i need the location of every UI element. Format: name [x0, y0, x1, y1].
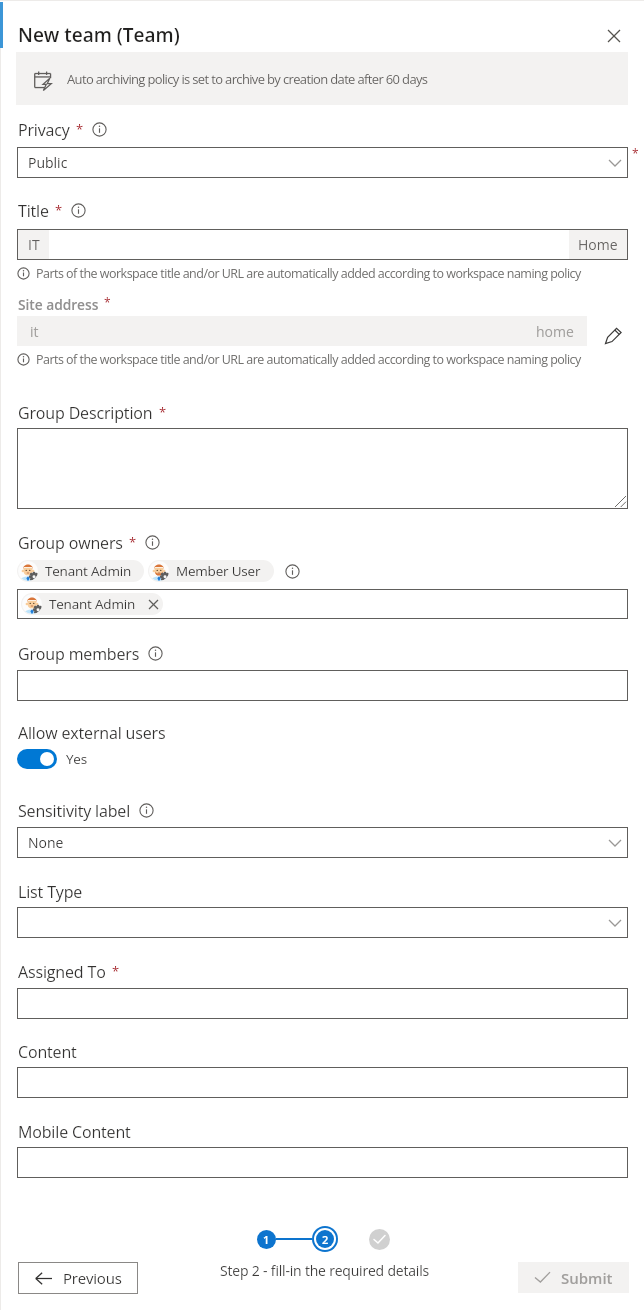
button[interactable]: Previous: [18, 1262, 138, 1294]
staticText: home: [536, 322, 574, 341]
button[interactable]: [17, 1067, 628, 1098]
staticText: it: [30, 322, 39, 341]
staticText: Group Description: [18, 402, 153, 424]
staticText: *: [104, 294, 111, 310]
button[interactable]: [17, 1147, 628, 1178]
button[interactable]: Tenant Admin: [21, 593, 163, 615]
button[interactable]: Edit site address: [601, 323, 626, 348]
staticText: *: [632, 145, 639, 161]
button[interactable]: Step 1: [257, 1230, 276, 1249]
button[interactable]: Member User: [148, 560, 274, 582]
staticText: Member User: [176, 562, 261, 580]
button[interactable]: Tenant Admin: [17, 589, 628, 619]
staticText: *: [112, 962, 120, 980]
staticText: Privacy: [18, 119, 70, 141]
staticText: Tenant Admin: [49, 595, 135, 613]
button[interactable]: Close: [598, 20, 630, 52]
staticText: Allow external users: [18, 722, 166, 744]
button[interactable]: Step 2: [312, 1226, 338, 1252]
button[interactable]: IT: [17, 229, 628, 260]
staticText: Auto archiving policy is set to archive …: [67, 70, 428, 88]
staticText: 2: [322, 1232, 329, 1247]
staticText: Tenant Admin: [45, 562, 131, 580]
staticText: Assigned To: [18, 961, 106, 983]
staticText: *: [55, 201, 63, 219]
button[interactable]: Remove Tenant Admin: [144, 595, 162, 613]
staticText: Submit: [561, 1268, 613, 1288]
staticText: New team (Team): [18, 22, 180, 48]
staticText: Group owners: [18, 532, 123, 554]
staticText: None: [28, 833, 64, 852]
button[interactable]: [17, 670, 628, 701]
button[interactable]: it: [17, 316, 587, 346]
staticText: *: [76, 120, 84, 138]
staticText: *: [129, 533, 137, 551]
button[interactable]: Tenant Admin: [17, 560, 144, 582]
button[interactable]: [17, 907, 628, 938]
staticText: Content: [18, 1041, 77, 1063]
staticText: 1: [263, 1232, 270, 1247]
staticText: List Type: [18, 881, 83, 903]
button[interactable]: Public: [17, 147, 628, 178]
button[interactable]: Submit: [518, 1262, 629, 1293]
staticText: *: [159, 403, 167, 421]
staticText: Title: [18, 200, 49, 222]
button[interactable]: Step 3: [369, 1229, 390, 1250]
staticText: Previous: [63, 1268, 122, 1288]
button[interactable]: None: [17, 827, 628, 858]
button[interactable]: Yes: [17, 749, 87, 769]
staticText: Site address: [18, 295, 99, 314]
staticText: Sensitivity label: [18, 800, 131, 822]
staticText: Step 2 - fill-in the required details: [220, 1261, 429, 1280]
staticText: Mobile Content: [18, 1121, 131, 1143]
staticText: IT: [28, 235, 40, 254]
staticText: Home: [578, 235, 618, 254]
button[interactable]: [17, 988, 628, 1019]
staticText: Parts of the workspace title and/or URL …: [36, 265, 581, 282]
staticText: Parts of the workspace title and/or URL …: [36, 351, 581, 368]
staticText: Public: [28, 153, 68, 172]
staticText: Group members: [18, 643, 140, 665]
staticText: Yes: [66, 750, 87, 768]
button[interactable]: [17, 428, 628, 509]
